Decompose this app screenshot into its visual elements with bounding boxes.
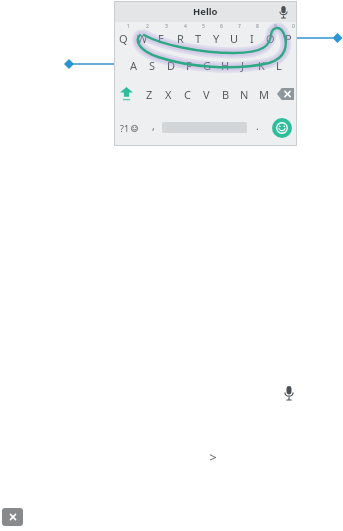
staticText: O bbox=[266, 31, 275, 46]
staticText: 4 bbox=[184, 23, 187, 30]
button[interactable]: G bbox=[198, 51, 216, 79]
staticText: P bbox=[285, 31, 292, 46]
staticText: > bbox=[209, 448, 217, 464]
button[interactable]: J bbox=[234, 51, 252, 79]
staticText: T bbox=[195, 31, 202, 46]
staticText: 6 bbox=[220, 23, 223, 30]
button[interactable]: 5 bbox=[189, 22, 207, 51]
staticText: R bbox=[177, 31, 184, 46]
staticText: H bbox=[221, 58, 230, 73]
staticText: W bbox=[137, 31, 148, 46]
button[interactable]: 4 bbox=[171, 22, 189, 51]
button[interactable]: L bbox=[270, 51, 288, 79]
staticText: 3 bbox=[165, 23, 168, 30]
staticText: U bbox=[230, 31, 239, 46]
button[interactable]: S bbox=[143, 51, 162, 79]
staticText: D bbox=[167, 58, 176, 73]
button[interactable]: C bbox=[178, 79, 197, 109]
button[interactable]: B bbox=[216, 79, 235, 109]
button[interactable]: Backspace bbox=[273, 79, 297, 109]
staticText: E bbox=[158, 31, 165, 46]
staticText: C bbox=[184, 87, 191, 102]
button[interactable]: Shift bbox=[114, 79, 139, 109]
button[interactable]: N bbox=[235, 79, 254, 109]
button[interactable]: 0 bbox=[279, 22, 297, 51]
staticText: I bbox=[250, 31, 254, 46]
button[interactable]: 6 bbox=[207, 22, 225, 51]
staticText: 8 bbox=[256, 23, 259, 30]
button[interactable]: Z bbox=[139, 79, 159, 109]
button[interactable]: X bbox=[159, 79, 178, 109]
button[interactable]: H bbox=[216, 51, 234, 79]
staticText: X bbox=[165, 87, 172, 102]
staticText: S bbox=[149, 58, 156, 73]
staticText: 2 bbox=[146, 23, 149, 30]
button[interactable]: Voice input bbox=[275, 4, 291, 20]
button[interactable]: Emoji bbox=[272, 118, 292, 138]
staticText: 0 bbox=[292, 23, 295, 30]
staticText: N bbox=[240, 87, 249, 102]
staticText: J bbox=[241, 58, 245, 73]
button[interactable]: M bbox=[254, 79, 273, 109]
button[interactable]: Close bbox=[2, 508, 23, 526]
button[interactable]: 3 bbox=[152, 22, 171, 51]
staticText: K bbox=[258, 58, 265, 73]
staticText: ?1 bbox=[120, 122, 130, 134]
staticText: Q bbox=[119, 31, 128, 46]
button[interactable]: 1 bbox=[114, 22, 133, 51]
button[interactable]: D bbox=[162, 51, 180, 79]
staticText: . bbox=[256, 119, 259, 133]
button[interactable]: V bbox=[197, 79, 216, 109]
button[interactable]: K bbox=[252, 51, 270, 79]
button[interactable]: 9 bbox=[261, 22, 279, 51]
button[interactable]: ?1 bbox=[114, 109, 144, 146]
button[interactable]: F bbox=[180, 51, 198, 79]
staticText: Y bbox=[213, 31, 220, 46]
staticText: 1 bbox=[127, 23, 130, 30]
button[interactable]: A bbox=[124, 51, 143, 79]
button[interactable]: 2 bbox=[133, 22, 152, 51]
staticText: B bbox=[222, 87, 230, 102]
staticText: , bbox=[152, 119, 155, 133]
staticText: M bbox=[259, 87, 269, 102]
staticText: 9 bbox=[274, 23, 277, 30]
staticText: A bbox=[130, 58, 138, 73]
staticText: 5 bbox=[202, 23, 205, 30]
button[interactable]: 7 bbox=[225, 22, 243, 51]
staticText: 7 bbox=[238, 23, 241, 30]
staticText: Z bbox=[146, 87, 153, 102]
button[interactable]: 8 bbox=[243, 22, 261, 51]
staticText: Hello bbox=[193, 5, 218, 18]
button[interactable]: Microphone bbox=[280, 384, 298, 402]
staticText: G bbox=[203, 58, 212, 73]
staticText: L bbox=[276, 58, 282, 73]
staticText: F bbox=[186, 58, 192, 73]
button[interactable]: . bbox=[247, 109, 267, 146]
button[interactable]: , bbox=[144, 109, 162, 146]
staticText: V bbox=[203, 87, 210, 102]
